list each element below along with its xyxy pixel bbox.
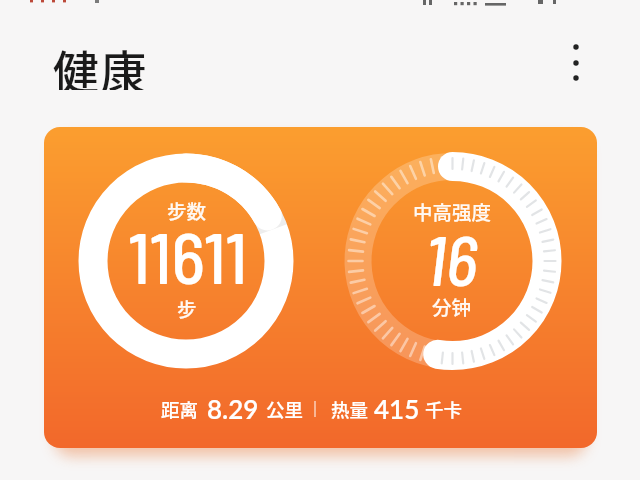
staticText: 步 [177,294,197,322]
staticText: 健康 [52,36,147,90]
staticText: 公里 [266,396,304,423]
staticText: 步数 [167,196,207,224]
staticText: 8.29 [207,393,259,423]
staticText: 415 [374,393,420,423]
staticText: 距离 [161,396,199,423]
staticText: 11611 [128,213,248,293]
staticText: 16 [425,217,478,297]
button[interactable] [44,127,597,448]
staticText: 分钟 [432,292,472,320]
staticText: 千卡 [425,396,463,423]
staticText: 热量 [331,396,369,423]
staticText: 中高强度 [413,197,492,225]
button[interactable] [558,33,594,93]
